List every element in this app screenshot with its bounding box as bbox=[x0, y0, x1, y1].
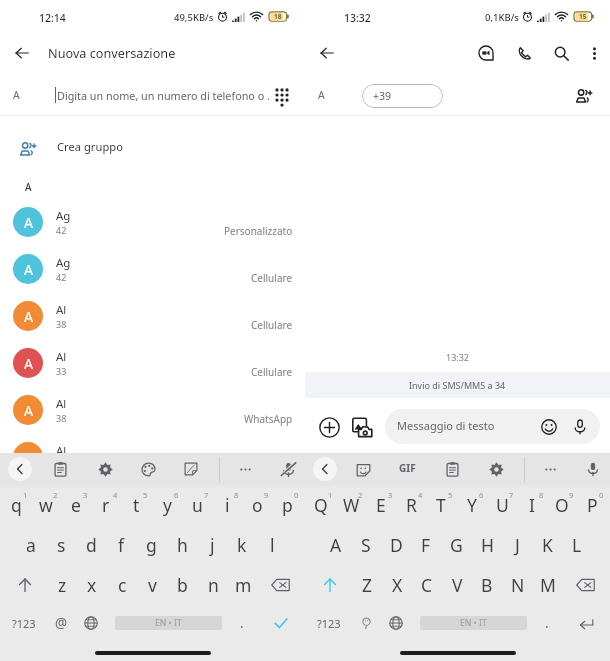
button[interactable]: R bbox=[396, 485, 426, 525]
button[interactable]: Emoji bbox=[535, 413, 563, 441]
button[interactable]: Video call bbox=[472, 39, 500, 67]
button[interactable]: J bbox=[502, 525, 532, 565]
button[interactable]: EN • IT bbox=[115, 616, 222, 630]
button[interactable]: Add people bbox=[570, 82, 598, 110]
button[interactable]: Back bbox=[313, 457, 337, 481]
button[interactable]: Clipboard bbox=[438, 455, 466, 483]
button[interactable]: EN • IT bbox=[420, 616, 527, 630]
button[interactable]: Search bbox=[547, 39, 575, 67]
button[interactable]: a bbox=[16, 525, 46, 565]
button[interactable]: Back bbox=[313, 39, 341, 67]
button[interactable]: T bbox=[426, 485, 456, 525]
button[interactable]: Call bbox=[510, 39, 538, 67]
button[interactable]: k bbox=[227, 525, 257, 565]
button[interactable]: O bbox=[547, 485, 577, 525]
button[interactable]: A bbox=[0, 391, 305, 438]
button[interactable]: W bbox=[336, 485, 366, 525]
button[interactable]: Settings bbox=[482, 455, 510, 483]
button[interactable]: H bbox=[472, 525, 502, 565]
button[interactable]: Settings bbox=[91, 455, 119, 483]
button[interactable]: More bbox=[231, 455, 259, 483]
button[interactable]: Enter bbox=[569, 607, 603, 639]
button[interactable]: A bbox=[0, 203, 305, 250]
button[interactable]: n bbox=[198, 565, 228, 605]
button[interactable]: D bbox=[381, 525, 411, 565]
button[interactable]: Backspace bbox=[566, 565, 604, 605]
button[interactable]: F bbox=[411, 525, 441, 565]
button[interactable]: h bbox=[167, 525, 197, 565]
button[interactable]: More bbox=[536, 455, 564, 483]
button[interactable]: A bbox=[0, 250, 305, 297]
button[interactable]: . bbox=[228, 607, 256, 639]
button[interactable]: Voice input bbox=[579, 455, 607, 483]
button[interactable]: w bbox=[31, 485, 61, 525]
button[interactable]: y bbox=[152, 485, 182, 525]
button[interactable]: Crea gruppo bbox=[0, 128, 305, 166]
button[interactable]: Language bbox=[76, 607, 106, 639]
button[interactable]: r bbox=[91, 485, 121, 525]
button[interactable]: P bbox=[577, 485, 607, 525]
button[interactable]: Theme bbox=[134, 455, 162, 483]
button[interactable]: g bbox=[136, 525, 166, 565]
button[interactable]: A bbox=[321, 525, 351, 565]
button[interactable]: I bbox=[517, 485, 547, 525]
button[interactable]: C bbox=[412, 565, 442, 605]
button[interactable]: f bbox=[106, 525, 136, 565]
button[interactable]: v bbox=[137, 565, 167, 605]
button[interactable]: ?123 bbox=[310, 607, 348, 639]
button[interactable]: z bbox=[47, 565, 77, 605]
button[interactable]: l bbox=[257, 525, 287, 565]
button[interactable]: x bbox=[77, 565, 107, 605]
button[interactable]: E bbox=[366, 485, 396, 525]
button[interactable]: @ bbox=[46, 607, 76, 639]
button[interactable]: Add bbox=[314, 412, 344, 442]
button[interactable]: +39 bbox=[362, 84, 443, 108]
button[interactable]: N bbox=[503, 565, 533, 605]
button[interactable]: A bbox=[0, 344, 305, 391]
button[interactable]: c bbox=[107, 565, 137, 605]
button[interactable]: . bbox=[533, 607, 561, 639]
button[interactable]: Stickers bbox=[349, 455, 377, 483]
button[interactable]: Done bbox=[264, 607, 298, 639]
button[interactable]: d bbox=[76, 525, 106, 565]
button[interactable]: Sticker bbox=[177, 455, 205, 483]
button[interactable]: Dialpad bbox=[268, 82, 296, 110]
button[interactable]: s bbox=[46, 525, 76, 565]
button[interactable]: A bbox=[0, 438, 305, 485]
button[interactable]: ?123 bbox=[5, 607, 43, 639]
button[interactable]: Z bbox=[352, 565, 382, 605]
button[interactable]: p bbox=[272, 485, 302, 525]
button[interactable]: V bbox=[442, 565, 472, 605]
button[interactable]: Shift bbox=[311, 565, 349, 605]
button[interactable]: S bbox=[351, 525, 381, 565]
button[interactable]: t bbox=[121, 485, 151, 525]
button[interactable]: Gallery bbox=[347, 412, 377, 442]
button[interactable]: M bbox=[533, 565, 563, 605]
button[interactable]: Q bbox=[306, 485, 336, 525]
button[interactable]: o bbox=[242, 485, 272, 525]
button[interactable]: Messaggio di testo bbox=[385, 409, 600, 444]
button[interactable]: i bbox=[212, 485, 242, 525]
button[interactable]: G bbox=[441, 525, 471, 565]
button[interactable]: Voice input bbox=[566, 413, 594, 441]
button[interactable]: e bbox=[61, 485, 91, 525]
button[interactable]: j bbox=[197, 525, 227, 565]
button[interactable]: b bbox=[167, 565, 197, 605]
button[interactable]: q bbox=[1, 485, 31, 525]
button[interactable]: Mic off bbox=[274, 455, 302, 483]
button[interactable]: A bbox=[0, 297, 305, 344]
button[interactable]: L bbox=[562, 525, 592, 565]
button[interactable]: Back bbox=[8, 457, 32, 481]
button[interactable]: Shift bbox=[6, 565, 44, 605]
button[interactable]: More options bbox=[580, 39, 608, 67]
button[interactable]: K bbox=[532, 525, 562, 565]
button[interactable]: Y bbox=[457, 485, 487, 525]
button[interactable]: X bbox=[382, 565, 412, 605]
button[interactable]: Back bbox=[8, 39, 36, 67]
button[interactable]: B bbox=[472, 565, 502, 605]
button[interactable]: Clipboard bbox=[46, 455, 74, 483]
button[interactable]: u bbox=[182, 485, 212, 525]
button[interactable]: GIF bbox=[393, 454, 421, 482]
button[interactable]: U bbox=[487, 485, 517, 525]
button[interactable]: Emoji bbox=[351, 607, 381, 639]
